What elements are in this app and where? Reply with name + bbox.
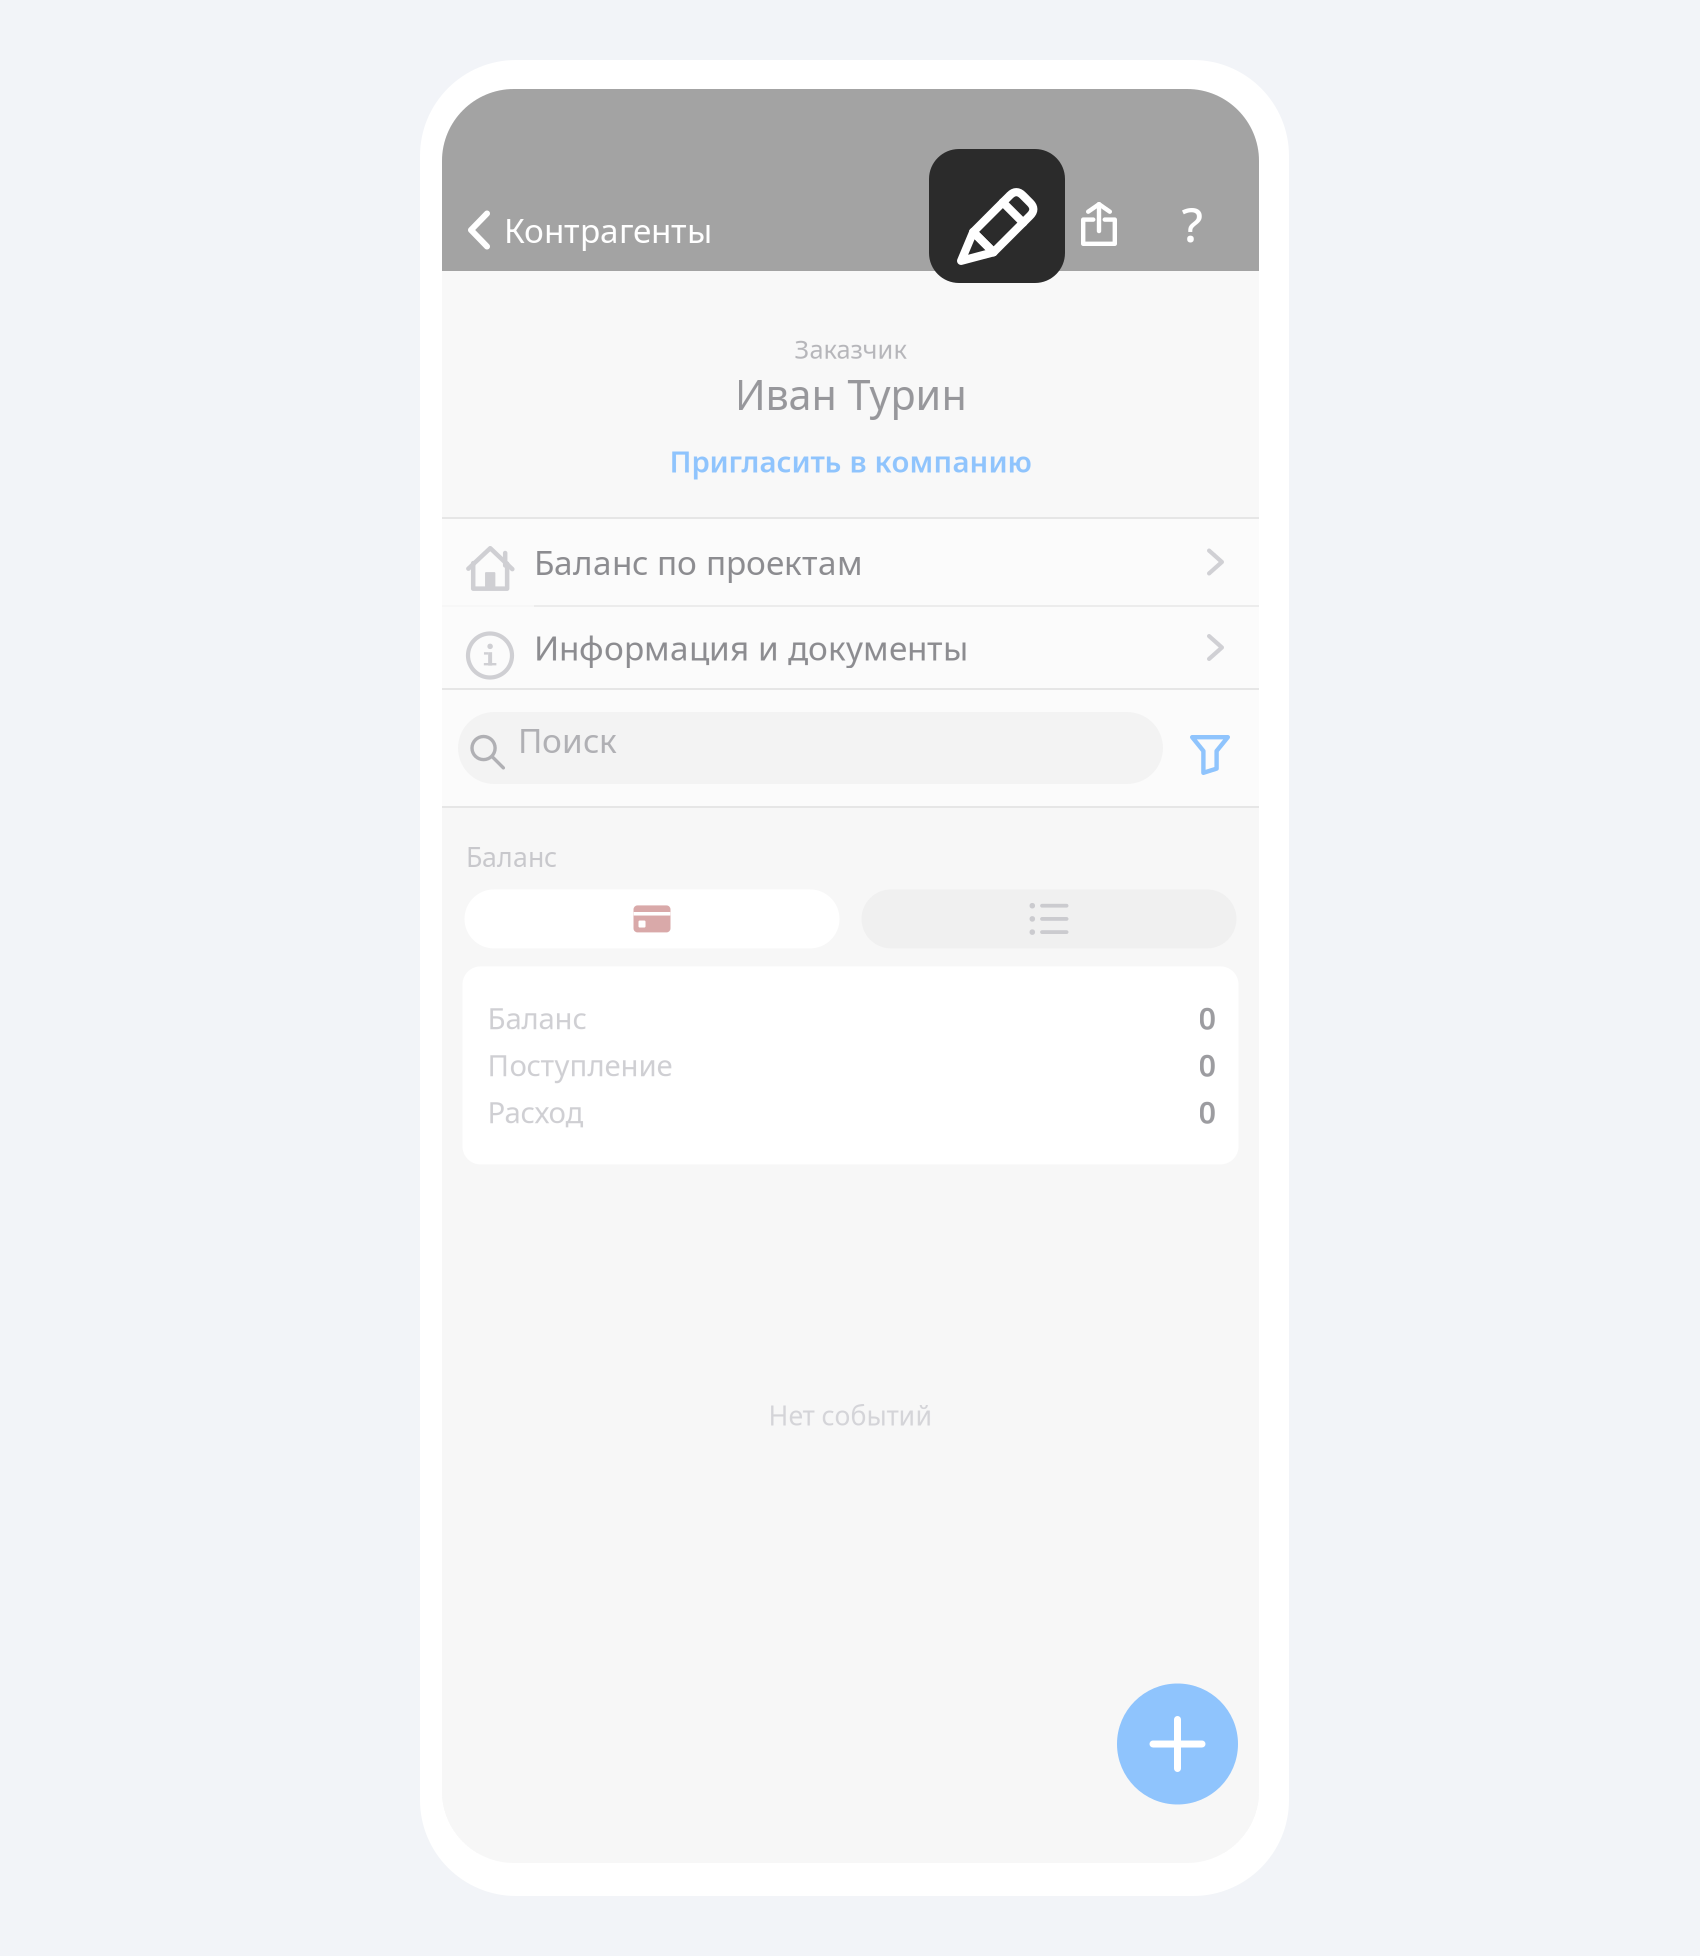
button[interactable]: Баланс по проектам (442, 519, 1259, 605)
button[interactable]: Поделиться (1056, 181, 1142, 267)
staticText: 0 (1198, 998, 1216, 1038)
staticText: Расход (487, 1092, 583, 1131)
button[interactable]: Информация и документы (442, 607, 1259, 688)
staticText: Баланс (487, 998, 586, 1037)
staticText: Баланс (466, 839, 557, 874)
button[interactable]: Справка (1149, 181, 1235, 267)
staticText: ? (1181, 192, 1202, 256)
staticText: Заказчик (794, 332, 906, 366)
staticText: Контрагенты (504, 208, 712, 252)
staticText: Иван Турин (734, 367, 966, 421)
button[interactable]: Контрагенты (442, 187, 728, 273)
staticText: Поступление (487, 1045, 672, 1084)
button[interactable]: Пригласить в компанию (639, 421, 1061, 492)
button[interactable]: Список операций (861, 889, 1236, 948)
staticText: Нет событий (768, 1397, 932, 1433)
staticText: 0 (1198, 1092, 1216, 1132)
staticText: Баланс по проектам (534, 540, 863, 584)
button[interactable]: Баланс (464, 889, 839, 948)
staticText: Информация и документы (534, 625, 968, 670)
button[interactable]: Редактировать (929, 149, 1065, 283)
button[interactable]: Добавить (1117, 1682, 1238, 1806)
staticText: Пригласить в компанию (669, 441, 1031, 480)
button[interactable]: Фильтр (1178, 709, 1242, 787)
staticText: Поиск (518, 718, 617, 762)
staticText: 0 (1198, 1045, 1216, 1085)
